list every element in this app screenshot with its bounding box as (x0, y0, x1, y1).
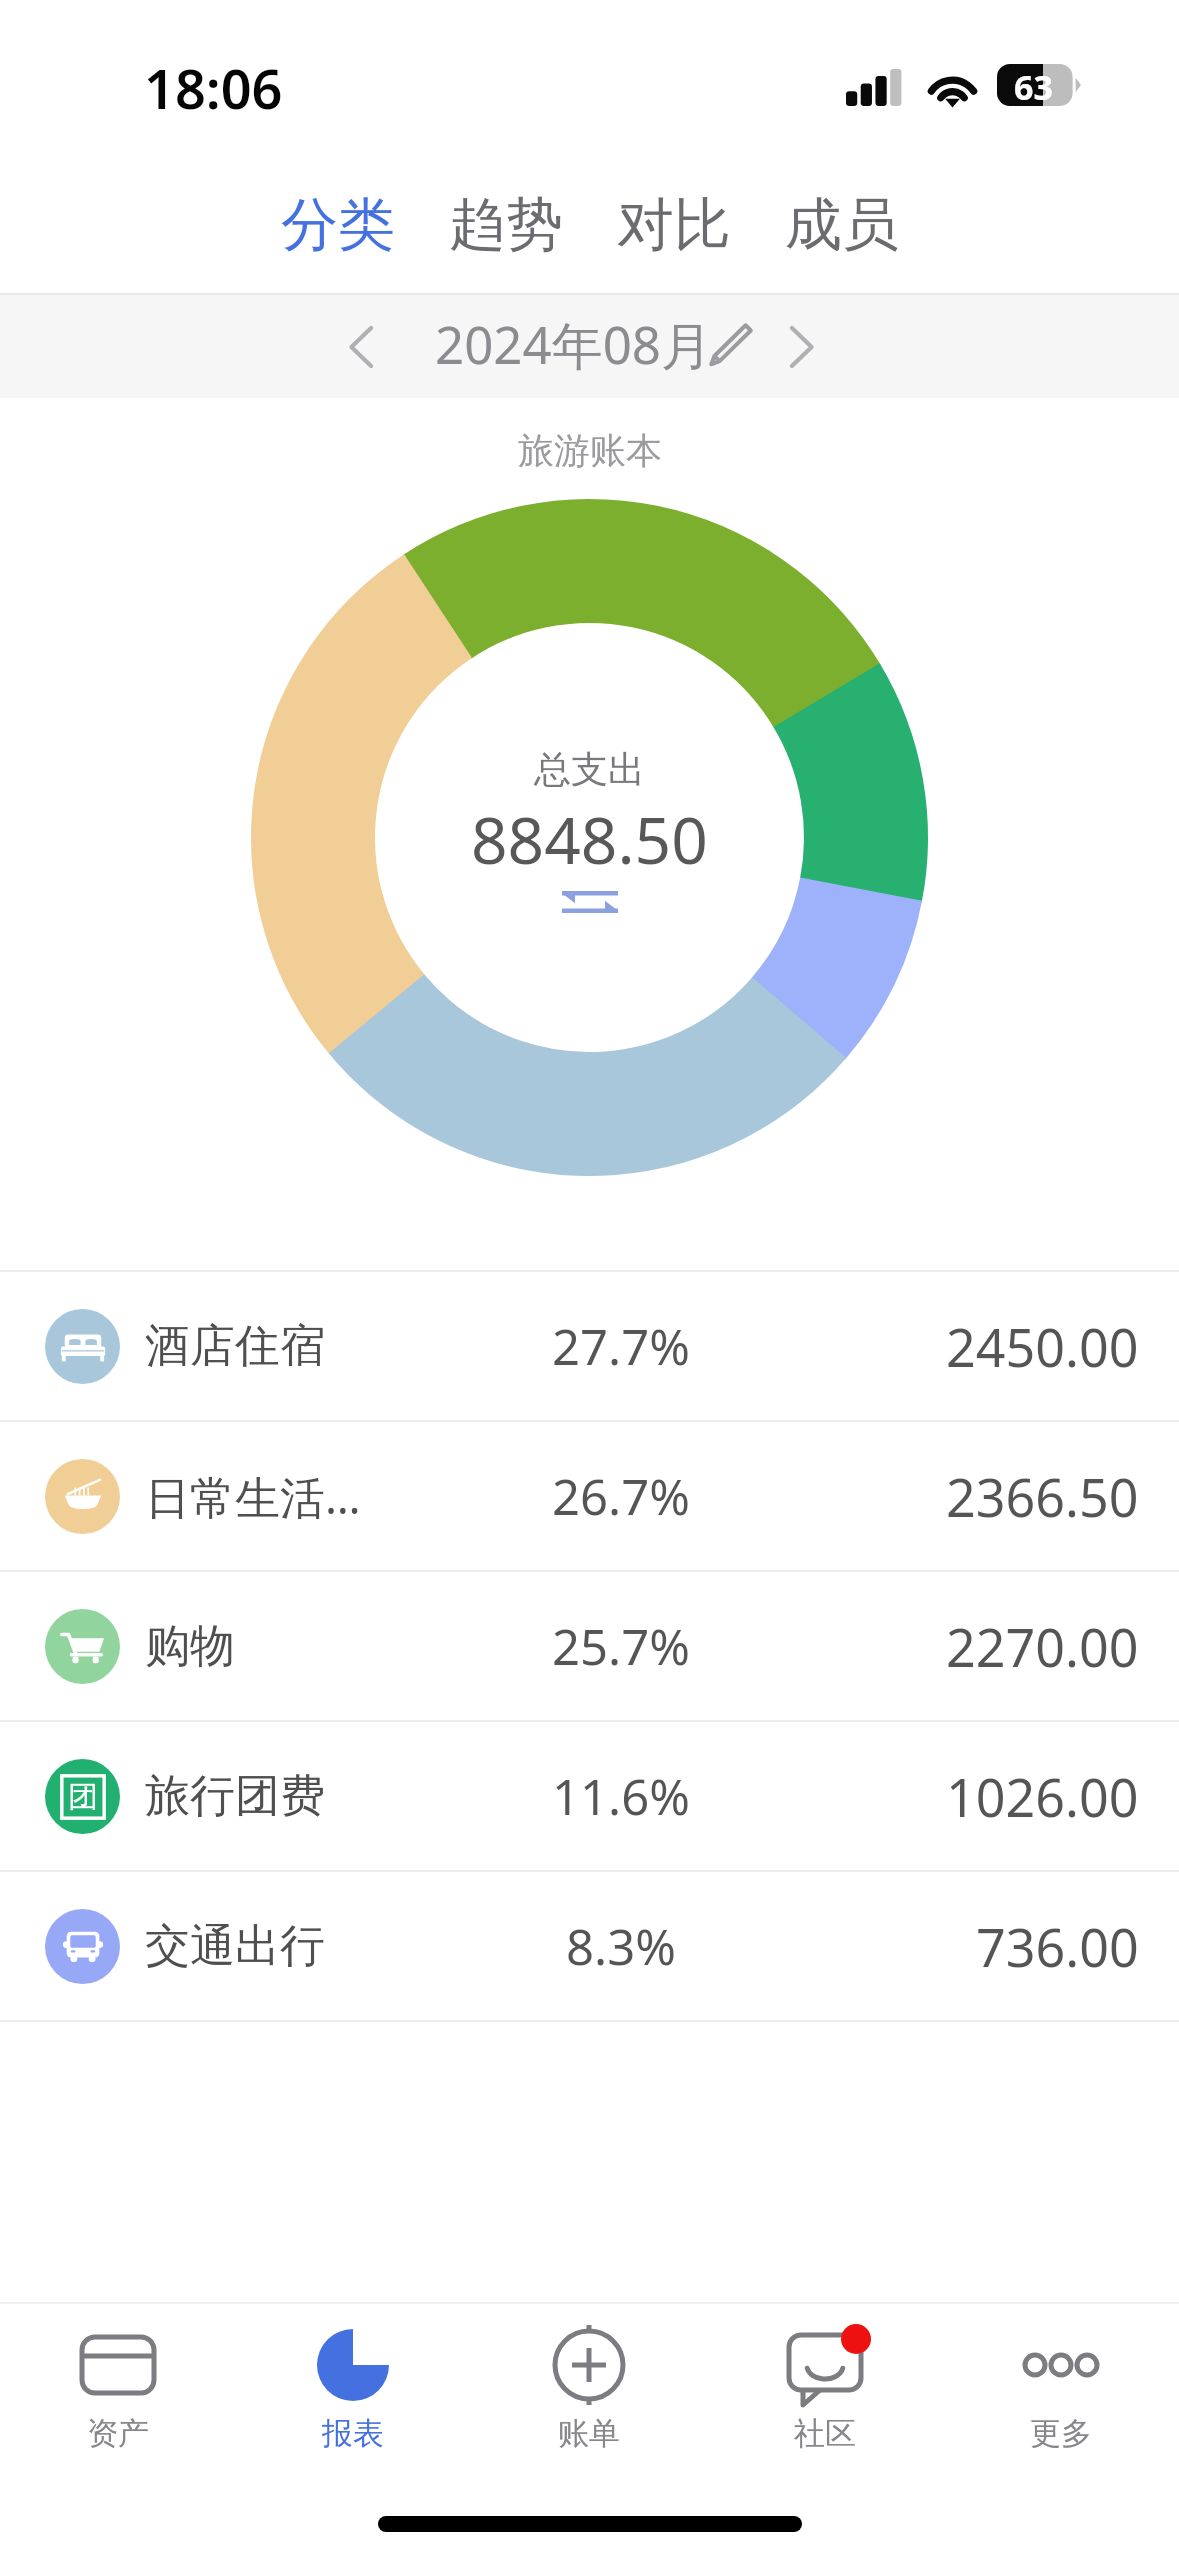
staticText: 2366.50 (946, 1461, 1139, 1532)
staticText: 63 (1014, 64, 1053, 106)
staticText: 26.7% (552, 1463, 690, 1530)
staticText: 报表 (322, 2414, 384, 2453)
staticText: 日常生活… (145, 1466, 361, 1527)
button[interactable]: 交通出行 (0, 1872, 1179, 2020)
button[interactable]: 趋势 (422, 175, 590, 275)
staticText: 社区 (794, 2414, 856, 2453)
staticText: 18:06 (144, 51, 283, 125)
button[interactable]: Previous month (329, 308, 393, 386)
staticText: 27.7% (552, 1313, 690, 1380)
staticText: 2270.00 (946, 1611, 1139, 1682)
button[interactable]: Next month (770, 308, 834, 386)
staticText: 团 (68, 1778, 98, 1816)
button[interactable]: 资产 (0, 2304, 235, 2494)
staticText: 更多 (1030, 2414, 1092, 2453)
staticText: 交通出行 (145, 1918, 325, 1975)
staticText: 25.7% (552, 1613, 690, 1680)
button[interactable]: Switch view (562, 891, 618, 913)
staticText: 8848.50 (471, 796, 708, 883)
staticText: 酒店住宿 (145, 1318, 325, 1375)
button[interactable]: 酒店住宿 (0, 1272, 1179, 1420)
staticText: 总支出 (534, 746, 645, 793)
staticText: 对比 (617, 189, 731, 261)
staticText: 趋势 (449, 189, 563, 261)
button[interactable]: 更多 (943, 2304, 1179, 2494)
staticText: 旅游账本 (518, 428, 662, 473)
button[interactable]: 分类 (254, 175, 422, 275)
staticText: 账单 (558, 2414, 620, 2453)
button[interactable]: 团 (0, 1722, 1179, 1870)
staticText: 2024年08月 (435, 309, 713, 379)
button[interactable]: 社区 (707, 2304, 943, 2494)
button[interactable]: 账单 (471, 2304, 707, 2494)
button[interactable]: 成员 (758, 175, 926, 275)
staticText: 8.3% (566, 1913, 676, 1980)
staticText: 1026.00 (946, 1761, 1139, 1832)
staticText: 2450.00 (946, 1311, 1139, 1382)
button[interactable]: 日常生活… (0, 1422, 1179, 1570)
staticText: 购物 (145, 1618, 235, 1675)
button[interactable]: 购物 (0, 1572, 1179, 1720)
button[interactable]: 报表 (235, 2304, 471, 2494)
staticText: 旅行团费 (145, 1768, 325, 1825)
staticText: 资产 (87, 2414, 149, 2453)
staticText: 成员 (785, 189, 899, 261)
staticText: 736.00 (976, 1911, 1139, 1982)
button[interactable]: 2024年08月 (435, 309, 765, 379)
button[interactable]: 对比 (590, 175, 758, 275)
staticText: 11.6% (552, 1763, 690, 1830)
staticText: 分类 (281, 189, 395, 261)
